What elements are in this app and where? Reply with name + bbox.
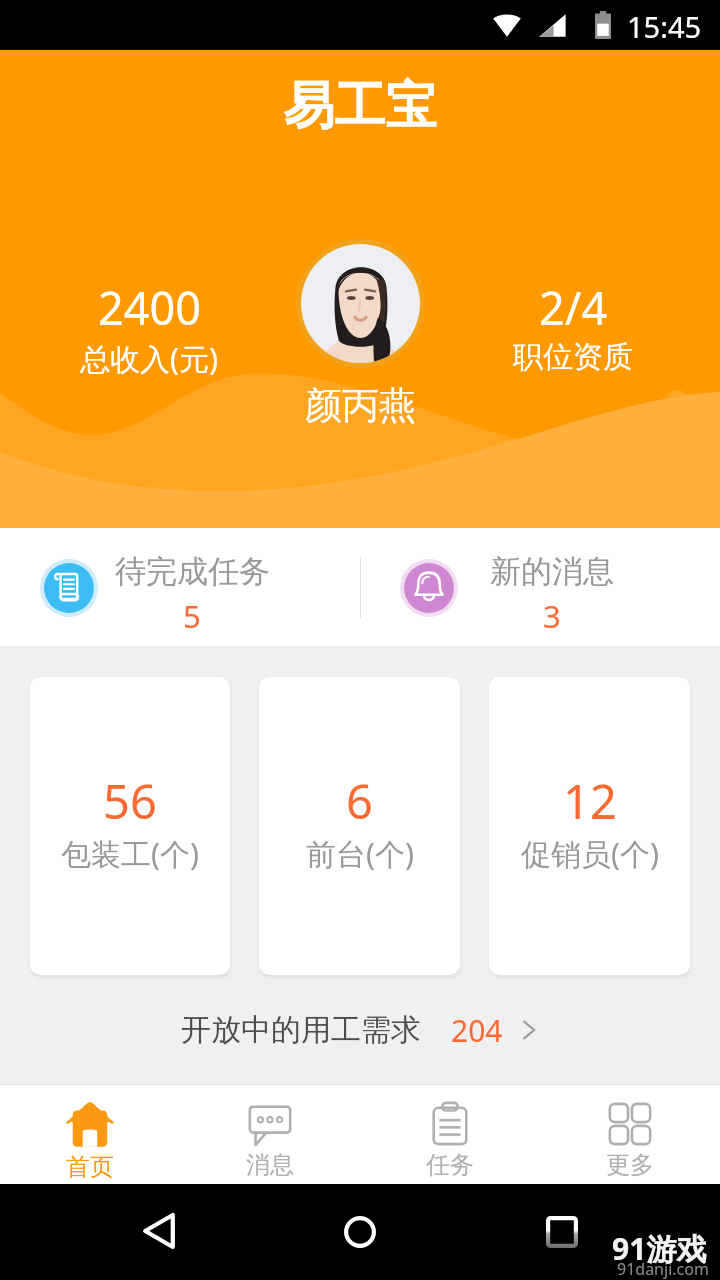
button[interactable]: Home — [320, 1192, 400, 1272]
staticText: 91danji.com — [617, 1258, 709, 1280]
staticText: 任务 — [426, 1150, 474, 1180]
staticText: 首页 — [66, 1152, 114, 1182]
staticText: 待完成任务 — [115, 552, 270, 591]
staticText: 2400 — [98, 277, 201, 338]
button[interactable]: 首页 — [0, 1085, 180, 1184]
button[interactable]: Back — [119, 1191, 199, 1271]
staticText: 3 — [543, 595, 561, 637]
staticText: 包装工(个) — [61, 833, 199, 874]
button[interactable]: New messages — [361, 528, 720, 646]
staticText: 易工宝 — [0, 74, 720, 138]
button[interactable]: 开放中的用工需求 — [0, 975, 720, 1085]
staticText: 2/4 — [539, 277, 608, 338]
staticText: 15:45 — [627, 7, 702, 46]
button[interactable]: 任务 — [360, 1085, 540, 1184]
button[interactable]: 56 — [30, 677, 230, 975]
staticText: 促销员(个) — [521, 833, 659, 874]
button[interactable]: 更多 — [540, 1085, 720, 1184]
staticText: 新的消息 — [490, 552, 614, 591]
button[interactable]: 12 — [489, 677, 690, 975]
staticText: 12 — [563, 769, 617, 833]
staticText: 6 — [346, 769, 373, 833]
staticText: 91游戏 — [612, 1228, 707, 1269]
button[interactable]: 6 — [259, 677, 460, 975]
other: New messages — [400, 559, 458, 617]
staticText: 前台(个) — [306, 833, 414, 874]
staticText: 更多 — [606, 1150, 654, 1180]
staticText: 总收入(元) — [80, 338, 218, 379]
staticText: 职位资质 — [513, 338, 633, 376]
other: Pending tasks — [40, 559, 98, 617]
staticText: 开放中的用工需求 — [181, 1011, 421, 1049]
staticText: 5 — [183, 595, 201, 637]
button[interactable]: 消息 — [180, 1085, 360, 1184]
staticText: 消息 — [246, 1150, 294, 1180]
button[interactable]: Recents — [522, 1192, 602, 1272]
staticText: 56 — [103, 769, 157, 833]
staticText: 颜丙燕 — [305, 382, 416, 429]
staticText: 204 — [451, 1010, 503, 1051]
button[interactable]: Pending tasks — [0, 528, 360, 646]
